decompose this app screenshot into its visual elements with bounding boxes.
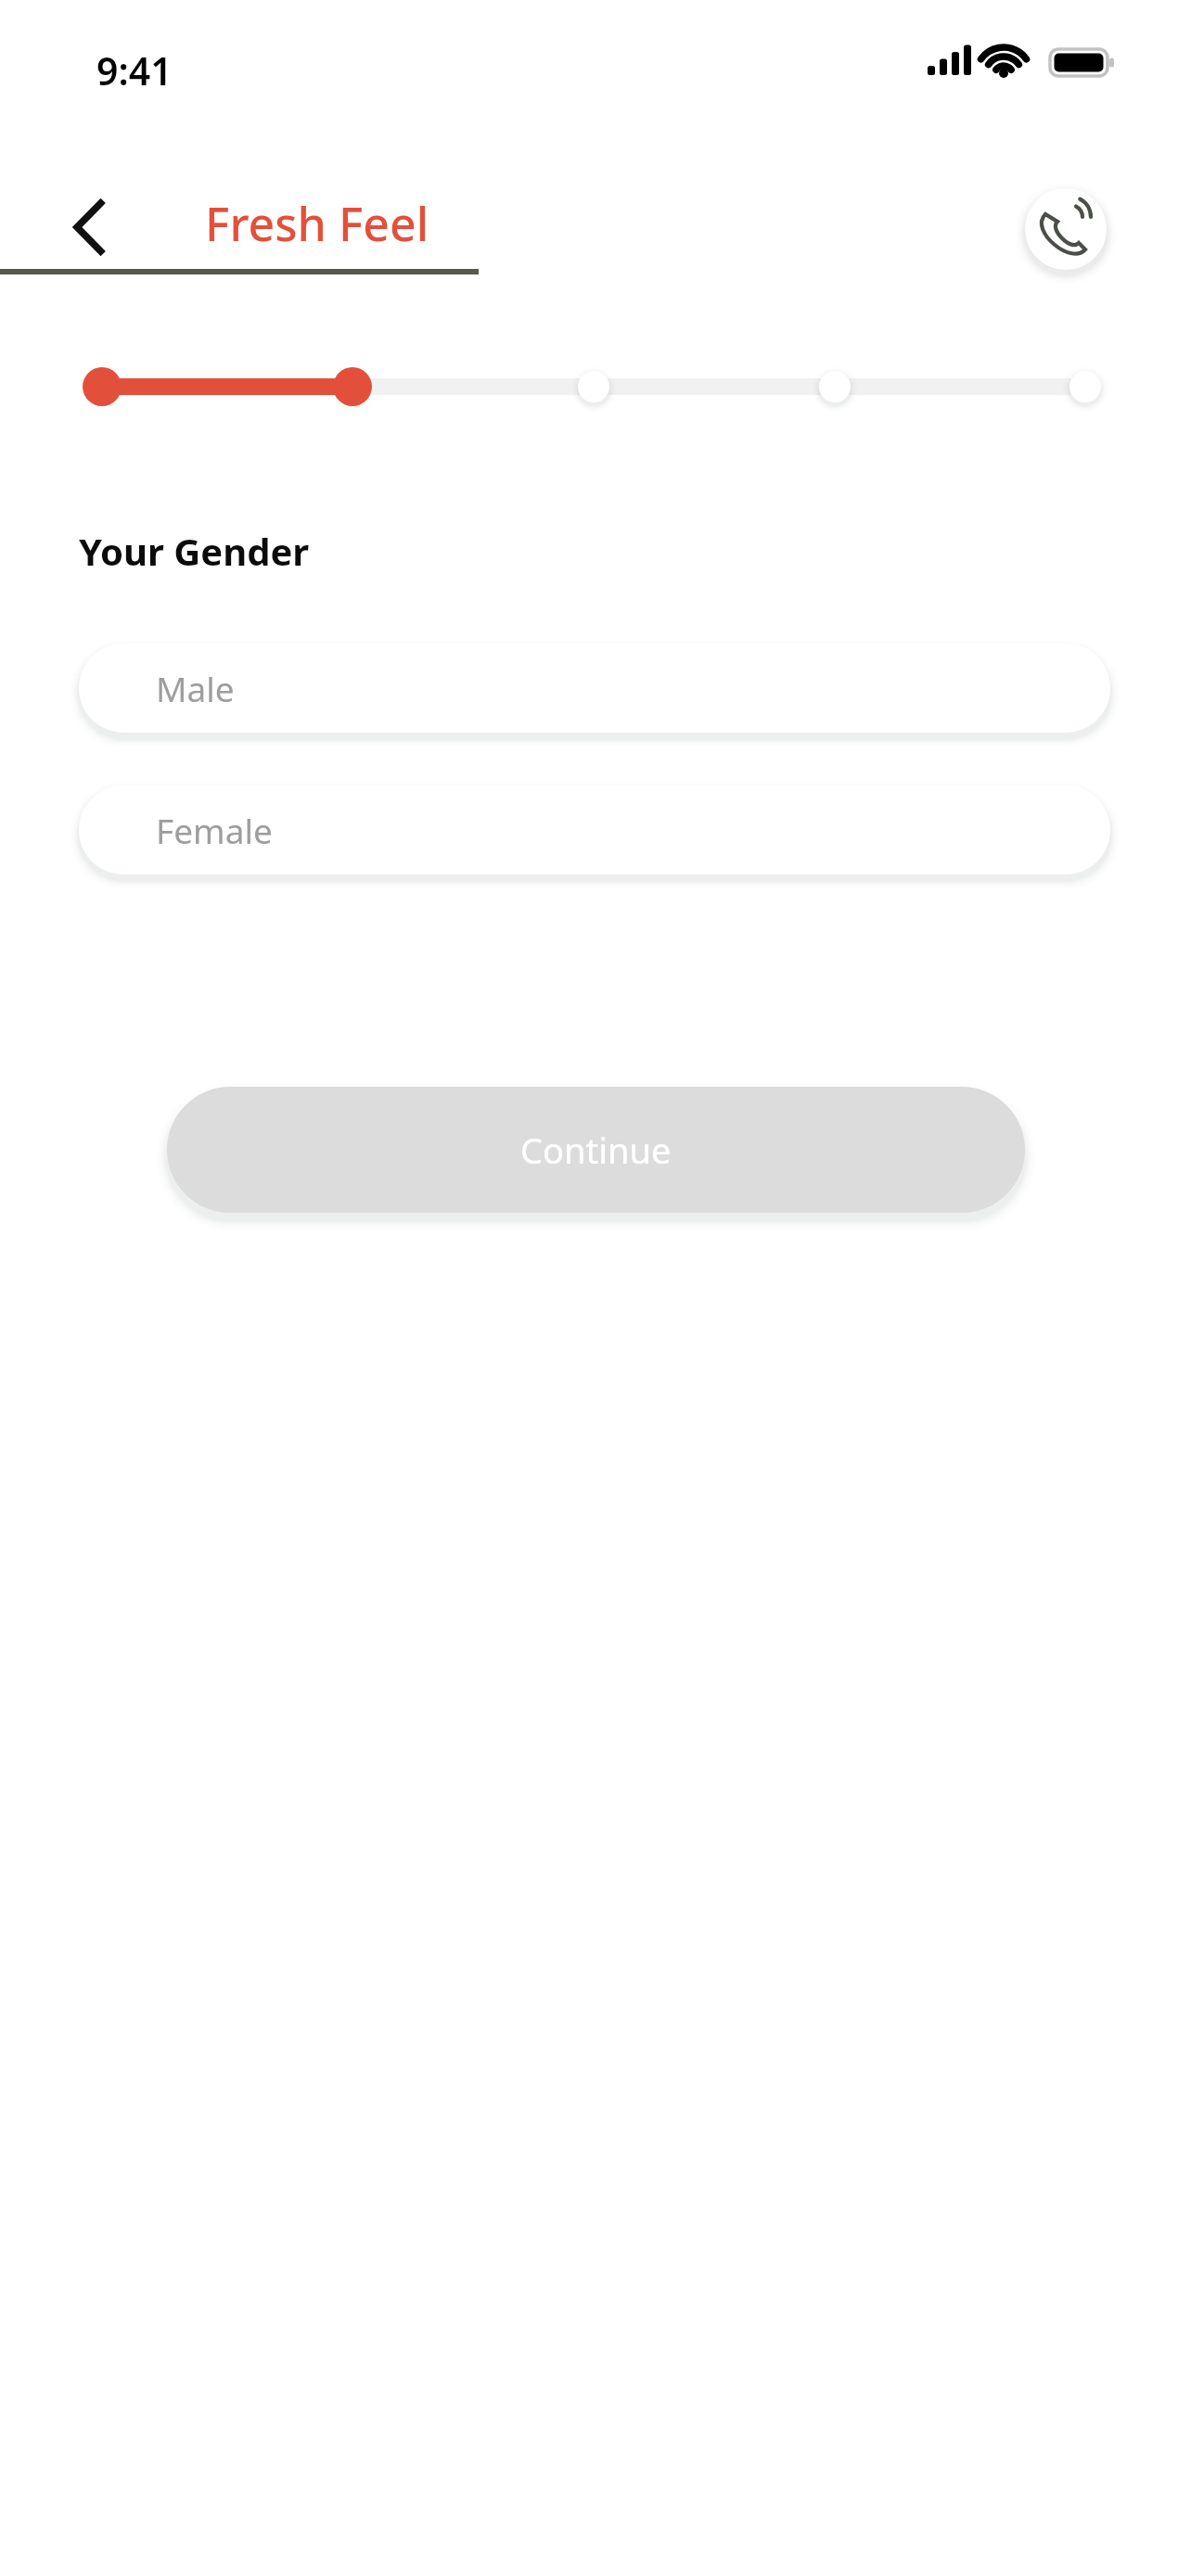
staticText: Fresh Feel — [205, 192, 429, 255]
staticText: Male — [156, 665, 235, 711]
staticText: Your Gender — [79, 526, 310, 576]
button[interactable]: Back — [48, 185, 134, 270]
button[interactable]: Male — [79, 644, 1110, 733]
staticText: 9:41 — [96, 45, 173, 96]
button[interactable]: Call — [1018, 182, 1113, 276]
staticText: Continue — [520, 1126, 672, 1174]
button[interactable]: Continue — [167, 1087, 1025, 1213]
staticText: Female — [156, 807, 273, 853]
button[interactable]: Female — [79, 785, 1110, 874]
